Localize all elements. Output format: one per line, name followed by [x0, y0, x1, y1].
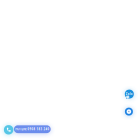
button[interactable]: Hotline 0908 183 240 — [14, 125, 51, 133]
button[interactable]: Chat on Zalo — [125, 89, 134, 100]
staticText: HOTLINE — [15, 127, 26, 131]
button[interactable]: Call hotline — [4, 125, 13, 134]
staticText: Zalo — [126, 92, 133, 96]
button[interactable]: Call — [125, 108, 133, 116]
staticText: 0908 183 240 — [27, 127, 49, 131]
